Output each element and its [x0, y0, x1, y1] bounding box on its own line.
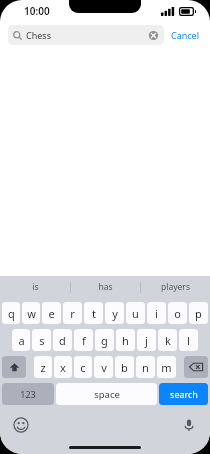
staticText: k [165, 333, 171, 348]
staticText: is [32, 281, 39, 293]
button[interactable]: players [141, 276, 210, 298]
staticText: space [94, 388, 120, 401]
button[interactable]: search [159, 383, 208, 405]
button[interactable]: Shift [2, 356, 26, 378]
button[interactable]: b [115, 356, 134, 378]
button[interactable]: w [22, 302, 40, 324]
button[interactable]: p [189, 302, 208, 324]
button[interactable]: a [12, 329, 30, 351]
staticText: Chess [26, 29, 51, 41]
staticText: Cancel [171, 29, 200, 41]
button[interactable]: z [34, 356, 52, 378]
staticText: search [170, 388, 198, 400]
button[interactable]: Backspace [184, 356, 208, 378]
button[interactable]: m [157, 356, 176, 378]
staticText: p [195, 306, 202, 321]
button[interactable]: q [2, 302, 20, 324]
button[interactable]: t [84, 302, 103, 324]
button[interactable]: Dictation [181, 417, 197, 433]
button[interactable]: j [137, 329, 156, 351]
button[interactable]: s [32, 329, 51, 351]
staticText: a [18, 333, 25, 348]
button[interactable]: u [126, 302, 145, 324]
staticText: q [8, 306, 15, 321]
button[interactable]: f [74, 329, 93, 351]
staticText: d [59, 333, 66, 348]
button[interactable]: n [136, 356, 155, 378]
staticText: e [48, 306, 55, 321]
button[interactable]: g [95, 329, 114, 351]
button[interactable]: space [56, 383, 157, 405]
staticText: y [112, 306, 118, 321]
button[interactable]: Chess [8, 25, 164, 45]
staticText: c [80, 360, 86, 375]
staticText: 123 [20, 388, 36, 400]
button[interactable]: e [42, 302, 61, 324]
button[interactable]: 123 [2, 383, 54, 405]
staticText: i [155, 306, 158, 321]
button[interactable]: o [168, 302, 187, 324]
button[interactable]: i [147, 302, 166, 324]
staticText: u [132, 306, 139, 321]
button[interactable]: d [53, 329, 72, 351]
button[interactable]: h [116, 329, 135, 351]
button[interactable]: is [0, 276, 70, 298]
staticText: l [187, 333, 190, 348]
button[interactable]: l [179, 329, 198, 351]
staticText: x [60, 360, 66, 375]
staticText: m [161, 360, 172, 375]
staticText: z [40, 360, 46, 375]
button[interactable]: k [158, 329, 177, 351]
staticText: n [142, 360, 149, 375]
staticText: b [121, 360, 128, 375]
button[interactable]: has [71, 276, 140, 298]
button[interactable]: Clear text [148, 30, 159, 41]
button[interactable]: y [105, 302, 124, 324]
staticText: s [39, 333, 45, 348]
button[interactable]: c [74, 356, 92, 378]
staticText: o [174, 306, 181, 321]
button[interactable]: v [94, 356, 113, 378]
staticText: j [145, 333, 148, 348]
button[interactable]: Cancel [164, 26, 202, 44]
button[interactable]: Emoji keyboard [13, 417, 29, 433]
staticText: h [122, 333, 129, 348]
staticText: w [27, 306, 36, 321]
staticText: t [92, 306, 96, 321]
button[interactable]: x [54, 356, 72, 378]
staticText: 10:00 [24, 4, 50, 18]
staticText: g [101, 333, 108, 348]
staticText: f [82, 333, 86, 348]
staticText: r [70, 306, 75, 321]
button[interactable]: r [63, 302, 82, 324]
staticText: has [98, 281, 113, 293]
staticText: v [101, 360, 107, 375]
staticText: players [161, 281, 190, 293]
